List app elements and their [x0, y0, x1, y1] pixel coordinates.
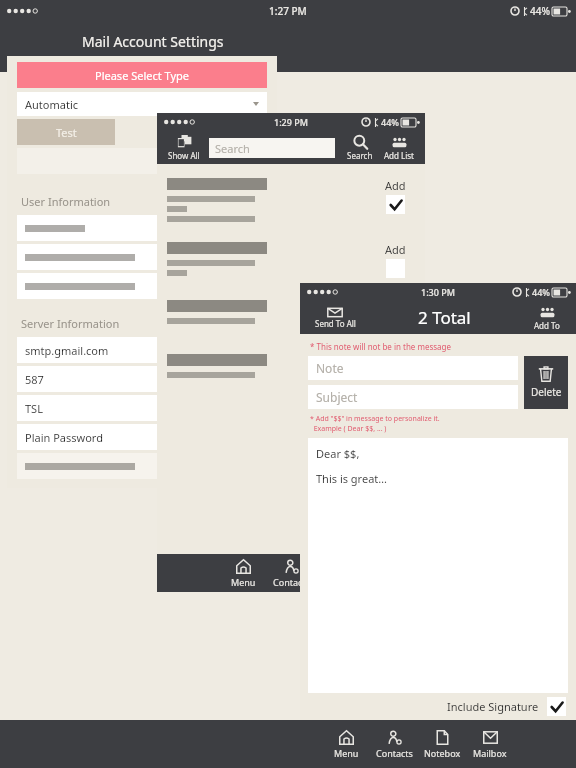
- staticText: Menu: [211, 577, 236, 589]
- staticText: 1:30 PM: [421, 286, 455, 298]
- button[interactable]: Test: [17, 119, 115, 145]
- staticText: Add: [385, 242, 406, 257]
- staticText: Notebox: [424, 747, 461, 759]
- button[interactable]: Contacts: [249, 557, 297, 592]
- staticText: Include Signature: [447, 699, 539, 714]
- staticText: Mailbox: [473, 747, 507, 759]
- button[interactable]: 587: [17, 366, 267, 392]
- staticText: Plain Password: [25, 430, 103, 445]
- button[interactable]: Dear $$,: [308, 438, 568, 693]
- button[interactable]: Plain Password: [17, 424, 267, 450]
- button[interactable]: Mailbox: [466, 727, 514, 762]
- staticText: 44%: [532, 286, 550, 298]
- button[interactable]: Note: [308, 356, 518, 380]
- staticText: Note: [316, 360, 344, 376]
- staticText: * This note will not be in the message: [310, 341, 452, 352]
- staticText: Mail Account Settings: [82, 32, 224, 51]
- button[interactable]: Add To: [526, 305, 568, 331]
- button[interactable]: Search: [341, 135, 379, 161]
- button[interactable]: Subject: [308, 385, 518, 409]
- staticText: Test: [56, 125, 77, 140]
- button[interactable]: Notebox: [418, 727, 466, 762]
- staticText: User Information: [21, 194, 111, 209]
- staticText: Dear $$,: [316, 446, 360, 461]
- staticText: Send To All: [315, 318, 356, 329]
- staticText: Server Information: [21, 316, 120, 331]
- button[interactable]: Please Select Type: [17, 62, 267, 88]
- staticText: smtp.gmail.com: [25, 343, 109, 358]
- button[interactable]: Include Signature: [300, 693, 576, 720]
- staticText: Add List: [384, 150, 415, 161]
- button[interactable]: Add: [157, 354, 425, 390]
- button[interactable]: Menu: [199, 557, 247, 592]
- button[interactable]: Add List: [379, 135, 419, 161]
- button[interactable]: smtp.gmail.com: [17, 337, 267, 363]
- button[interactable]: Search: [209, 138, 335, 158]
- button[interactable]: N: [299, 557, 347, 592]
- staticText: Add: [385, 354, 406, 369]
- staticText: Contacts: [255, 577, 292, 589]
- staticText: Automatic: [25, 97, 78, 112]
- staticText: Add To: [534, 320, 560, 331]
- button[interactable]: Add: [157, 242, 425, 278]
- button[interactable]: TSL: [17, 395, 267, 421]
- staticText: 587: [25, 372, 44, 387]
- button[interactable]: Delete: [524, 356, 568, 409]
- staticText: Menu: [334, 747, 359, 759]
- button[interactable]: Menu: [322, 727, 370, 762]
- button[interactable]: Add: [157, 178, 425, 224]
- button[interactable]: Menu: [219, 556, 267, 591]
- staticText: * Add "$$" in message to personalize it.: [310, 414, 440, 424]
- staticText: Subject: [316, 389, 358, 405]
- button[interactable]: Add: [157, 300, 425, 336]
- staticText: Search: [215, 141, 250, 156]
- staticText: Menu: [231, 576, 256, 588]
- button[interactable]: Contacts: [370, 727, 418, 762]
- button[interactable]: Automatic: [17, 92, 267, 116]
- staticText: Add: [385, 178, 406, 193]
- staticText: 2 Total: [418, 306, 471, 329]
- staticText: Example ( Dear $$, ... ): [310, 424, 387, 434]
- staticText: 1:29 PM: [274, 116, 308, 128]
- staticText: Please Select Type: [95, 68, 190, 83]
- staticText: Contacts: [376, 747, 413, 759]
- staticText: Search: [347, 150, 373, 161]
- button[interactable]: Send To All: [308, 307, 362, 329]
- button[interactable]: Show All: [163, 135, 205, 161]
- staticText: 44%: [381, 116, 399, 128]
- staticText: TSL: [25, 401, 43, 416]
- staticText: Delete: [531, 385, 562, 399]
- staticText: 44%: [530, 4, 550, 18]
- staticText: Show All: [168, 150, 200, 161]
- staticText: Contacts: [273, 576, 310, 588]
- staticText: 1:27 PM: [269, 4, 307, 18]
- staticText: This is great…: [316, 471, 387, 486]
- button[interactable]: Contacts: [267, 556, 315, 591]
